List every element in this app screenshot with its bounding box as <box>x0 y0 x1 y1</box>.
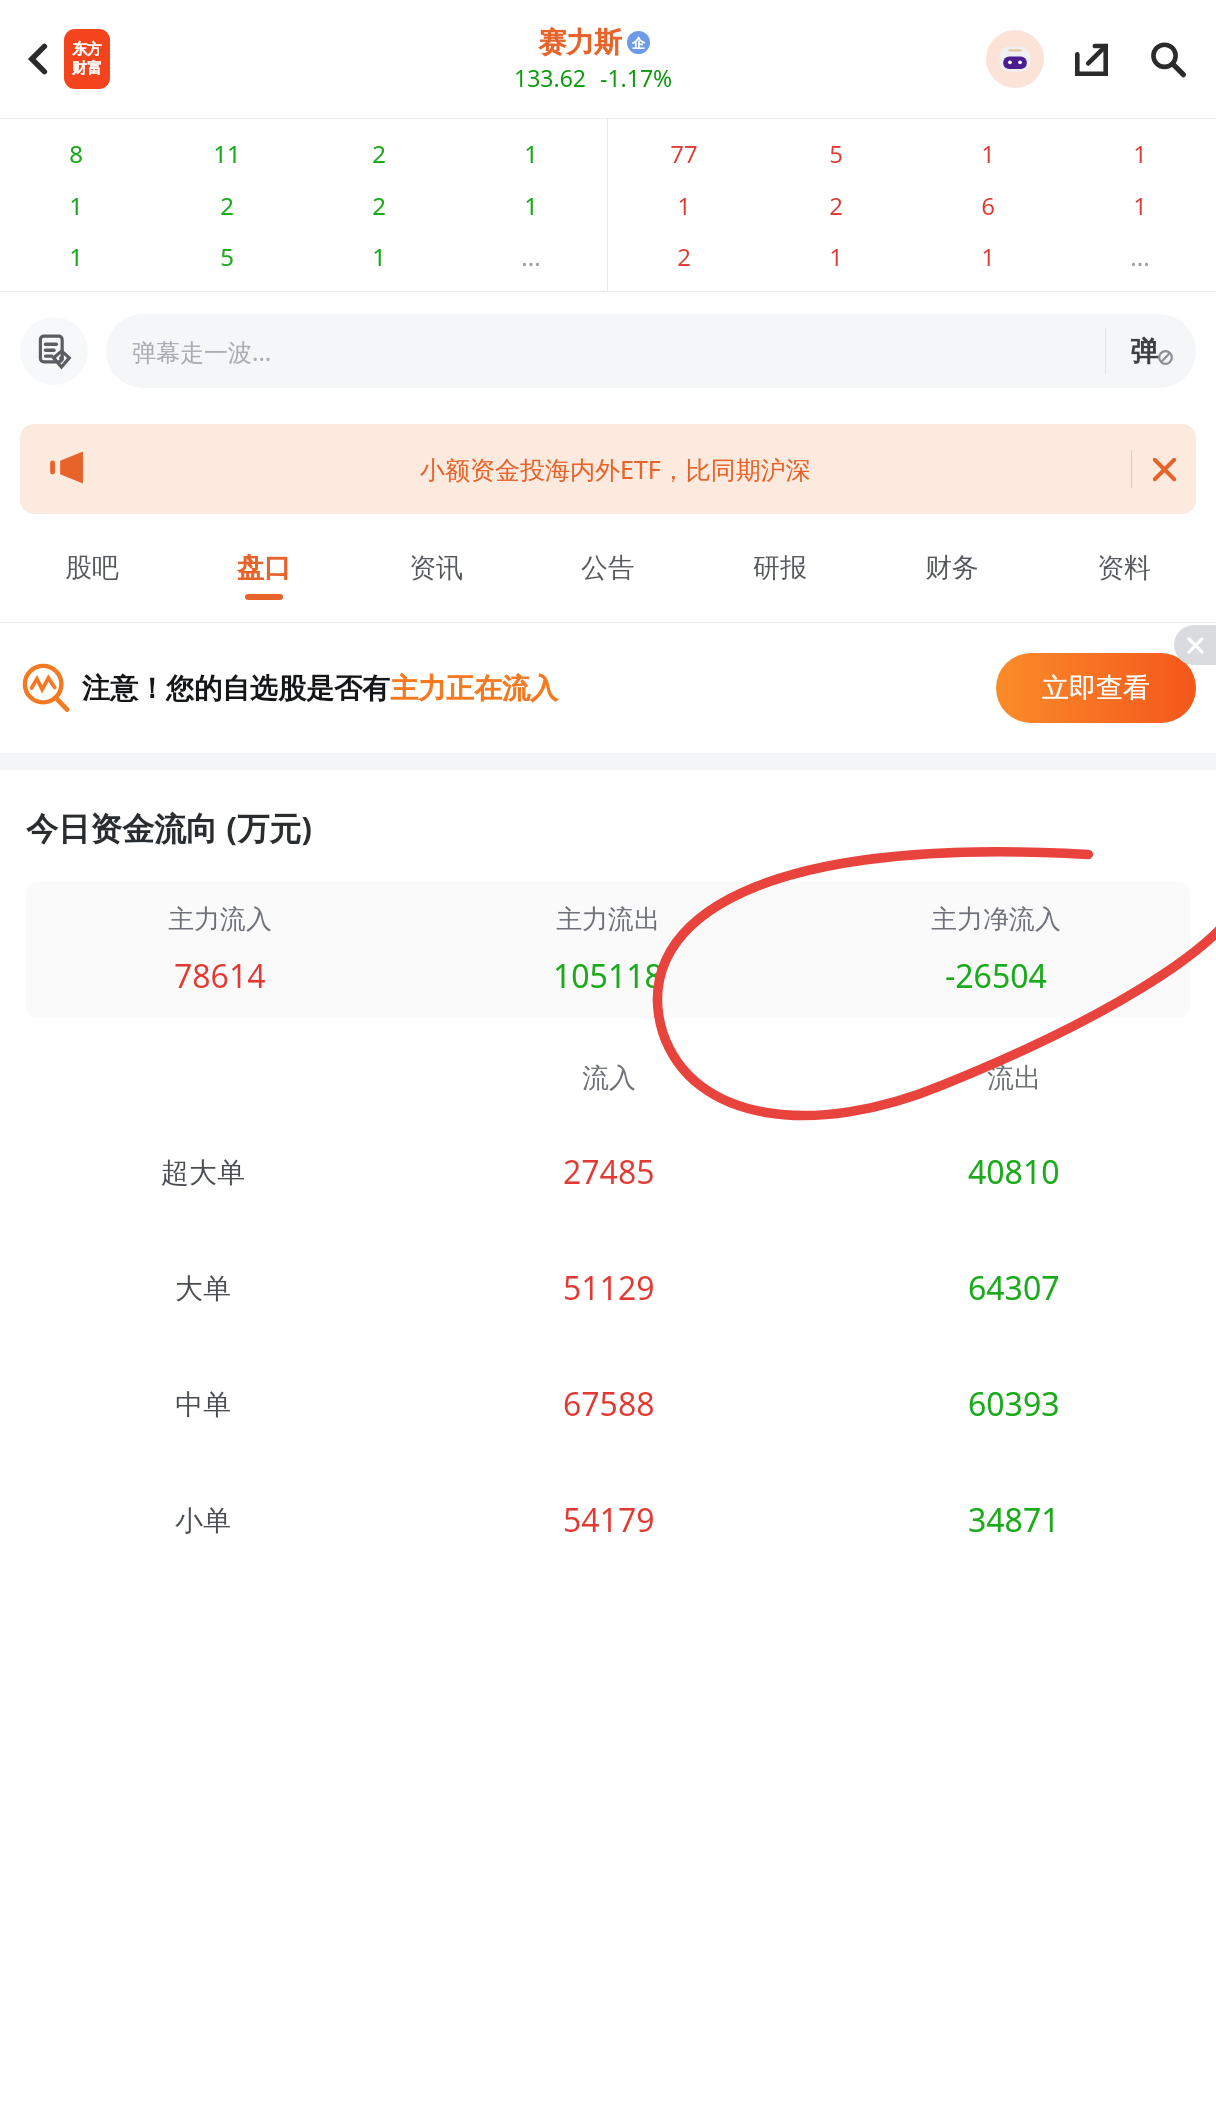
staticText: 主力净流入 <box>931 903 1061 936</box>
staticText: ... <box>1130 240 1150 273</box>
button[interactable]: 资讯 <box>350 528 522 622</box>
button[interactable]: 立即查看 <box>996 653 1196 723</box>
button[interactable]: AI assistant <box>986 30 1044 88</box>
staticText: -1.17% <box>600 62 673 93</box>
staticText: 5 <box>220 240 234 273</box>
staticText: 资讯 <box>409 551 463 585</box>
staticText: 60393 <box>968 1382 1060 1426</box>
staticText: 40810 <box>968 1150 1060 1194</box>
staticText: 1 <box>69 189 83 222</box>
staticText: 2 <box>372 137 386 170</box>
staticText: 公告 <box>581 551 635 585</box>
staticText: 105118 <box>553 954 663 998</box>
staticText: 注意！您的自选股是否有 <box>82 671 390 706</box>
button[interactable]: 股吧 <box>6 528 178 622</box>
staticText: 财务 <box>925 551 979 585</box>
staticText: 1 <box>524 189 538 222</box>
staticText: 弹幕走一波... <box>132 335 1105 368</box>
staticText: 资料 <box>1097 551 1151 585</box>
staticText: 赛力斯 <box>538 25 622 60</box>
button[interactable]: Search <box>1138 30 1196 88</box>
staticText: 64307 <box>968 1266 1060 1310</box>
staticText: 主力流入 <box>168 903 272 936</box>
staticText: 5 <box>829 137 843 170</box>
button[interactable]: 资料 <box>1038 528 1210 622</box>
button[interactable]: 小单 <box>0 1462 1216 1578</box>
staticText: 企 <box>632 35 645 51</box>
staticText: 主力正在流入 <box>390 671 558 706</box>
button[interactable]: 超大单 <box>0 1114 1216 1230</box>
button[interactable]: 盘口 <box>178 528 350 622</box>
button[interactable]: Dismiss ad <box>1174 625 1216 665</box>
staticText: 11 <box>213 137 241 170</box>
staticText: 1 <box>981 137 995 170</box>
staticText: ... <box>521 240 541 273</box>
staticText: 研报 <box>753 551 807 585</box>
button[interactable]: 研报 <box>694 528 866 622</box>
staticText: 大单 <box>175 1271 231 1306</box>
staticText: 弹 <box>1130 334 1158 369</box>
staticText: 54179 <box>563 1498 655 1542</box>
button[interactable]: 公告 <box>522 528 694 622</box>
staticText: 77 <box>670 137 698 170</box>
staticText: 6 <box>981 189 995 222</box>
staticText: 1 <box>829 240 843 273</box>
button[interactable]: 弹 <box>1106 314 1196 388</box>
staticText: 东方 <box>72 40 102 59</box>
staticText: 1 <box>524 137 538 170</box>
staticText: 1 <box>981 240 995 273</box>
button[interactable]: 中单 <box>0 1346 1216 1462</box>
button[interactable]: 小额资金投海内外ETF，比同期沪深 <box>20 424 1196 514</box>
button[interactable]: Reports <box>20 317 88 385</box>
staticText: 小额资金投海内外ETF，比同期沪深 <box>420 452 811 486</box>
staticText: 2 <box>829 189 843 222</box>
staticText: 34871 <box>968 1498 1060 1542</box>
staticText: 中单 <box>175 1387 231 1422</box>
staticText: 1 <box>1133 189 1147 222</box>
staticText: 1 <box>69 240 83 273</box>
staticText: 今日资金流向 (万元) <box>26 806 313 850</box>
staticText: 78614 <box>174 954 266 998</box>
staticText: 27485 <box>563 1150 655 1194</box>
staticText: 小单 <box>175 1503 231 1538</box>
staticText: 51129 <box>563 1266 655 1310</box>
button[interactable]: 大单 <box>0 1230 1216 1346</box>
button[interactable]: East Money <box>64 29 110 89</box>
staticText: 2 <box>677 240 691 273</box>
staticText: 1 <box>677 189 691 222</box>
staticText: 流出 <box>987 1061 1041 1095</box>
staticText: 133.62 <box>514 62 586 93</box>
staticText: 8 <box>69 137 83 170</box>
button[interactable]: Close <box>1132 424 1196 514</box>
staticText: 1 <box>372 240 386 273</box>
staticText: 财富 <box>72 59 102 78</box>
staticText: 主力流出 <box>556 903 660 936</box>
staticText: 流入 <box>582 1061 636 1095</box>
staticText: 1 <box>1133 137 1147 170</box>
button[interactable]: 主力流入 <box>26 882 1190 1018</box>
staticText: 立即查看 <box>1042 671 1150 705</box>
staticText: 67588 <box>563 1382 655 1426</box>
button[interactable]: 弹幕走一波... <box>106 314 1196 388</box>
button[interactable]: 财务 <box>866 528 1038 622</box>
staticText: 2 <box>220 189 234 222</box>
staticText: 2 <box>372 189 386 222</box>
button[interactable]: Back <box>12 32 66 86</box>
button[interactable]: Share <box>1064 32 1118 86</box>
staticText: 盘口 <box>237 551 291 585</box>
button[interactable]: 注意！您的自选股是否有 <box>0 623 1216 753</box>
staticText: 超大单 <box>161 1155 245 1190</box>
staticText: -26504 <box>945 954 1047 998</box>
staticText: 股吧 <box>65 551 119 585</box>
